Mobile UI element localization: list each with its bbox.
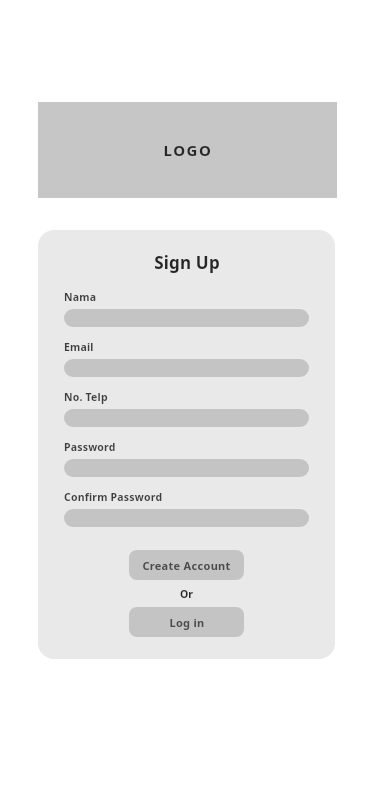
staticText: Create Account	[142, 558, 231, 573]
staticText: Nama	[64, 290, 97, 304]
staticText: Confirm Password	[64, 490, 163, 504]
staticText: Password	[64, 440, 116, 454]
button[interactable]: Log in	[129, 607, 244, 637]
staticText: Email	[64, 340, 94, 354]
button[interactable]: Create Account	[129, 550, 244, 580]
staticText: Sign Up	[154, 251, 220, 274]
staticText: No. Telp	[64, 390, 108, 404]
staticText: Or	[180, 587, 193, 601]
button[interactable]	[64, 409, 309, 427]
button[interactable]: LOGO	[38, 102, 337, 198]
staticText: Log in	[169, 615, 205, 630]
staticText: LOGO	[163, 140, 213, 160]
button[interactable]	[64, 509, 309, 527]
button[interactable]	[64, 359, 309, 377]
button[interactable]	[64, 459, 309, 477]
button[interactable]	[64, 309, 309, 327]
